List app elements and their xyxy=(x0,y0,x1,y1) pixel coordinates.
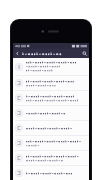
button[interactable] xyxy=(13,166,89,180)
button[interactable] xyxy=(13,106,89,121)
button[interactable] xyxy=(13,151,89,166)
button[interactable] xyxy=(13,76,89,91)
button[interactable] xyxy=(13,58,89,76)
button[interactable]: Back xyxy=(13,49,22,58)
button[interactable] xyxy=(13,91,89,106)
button[interactable]: Search xyxy=(80,49,89,58)
button[interactable] xyxy=(13,136,89,151)
button[interactable] xyxy=(13,121,89,136)
